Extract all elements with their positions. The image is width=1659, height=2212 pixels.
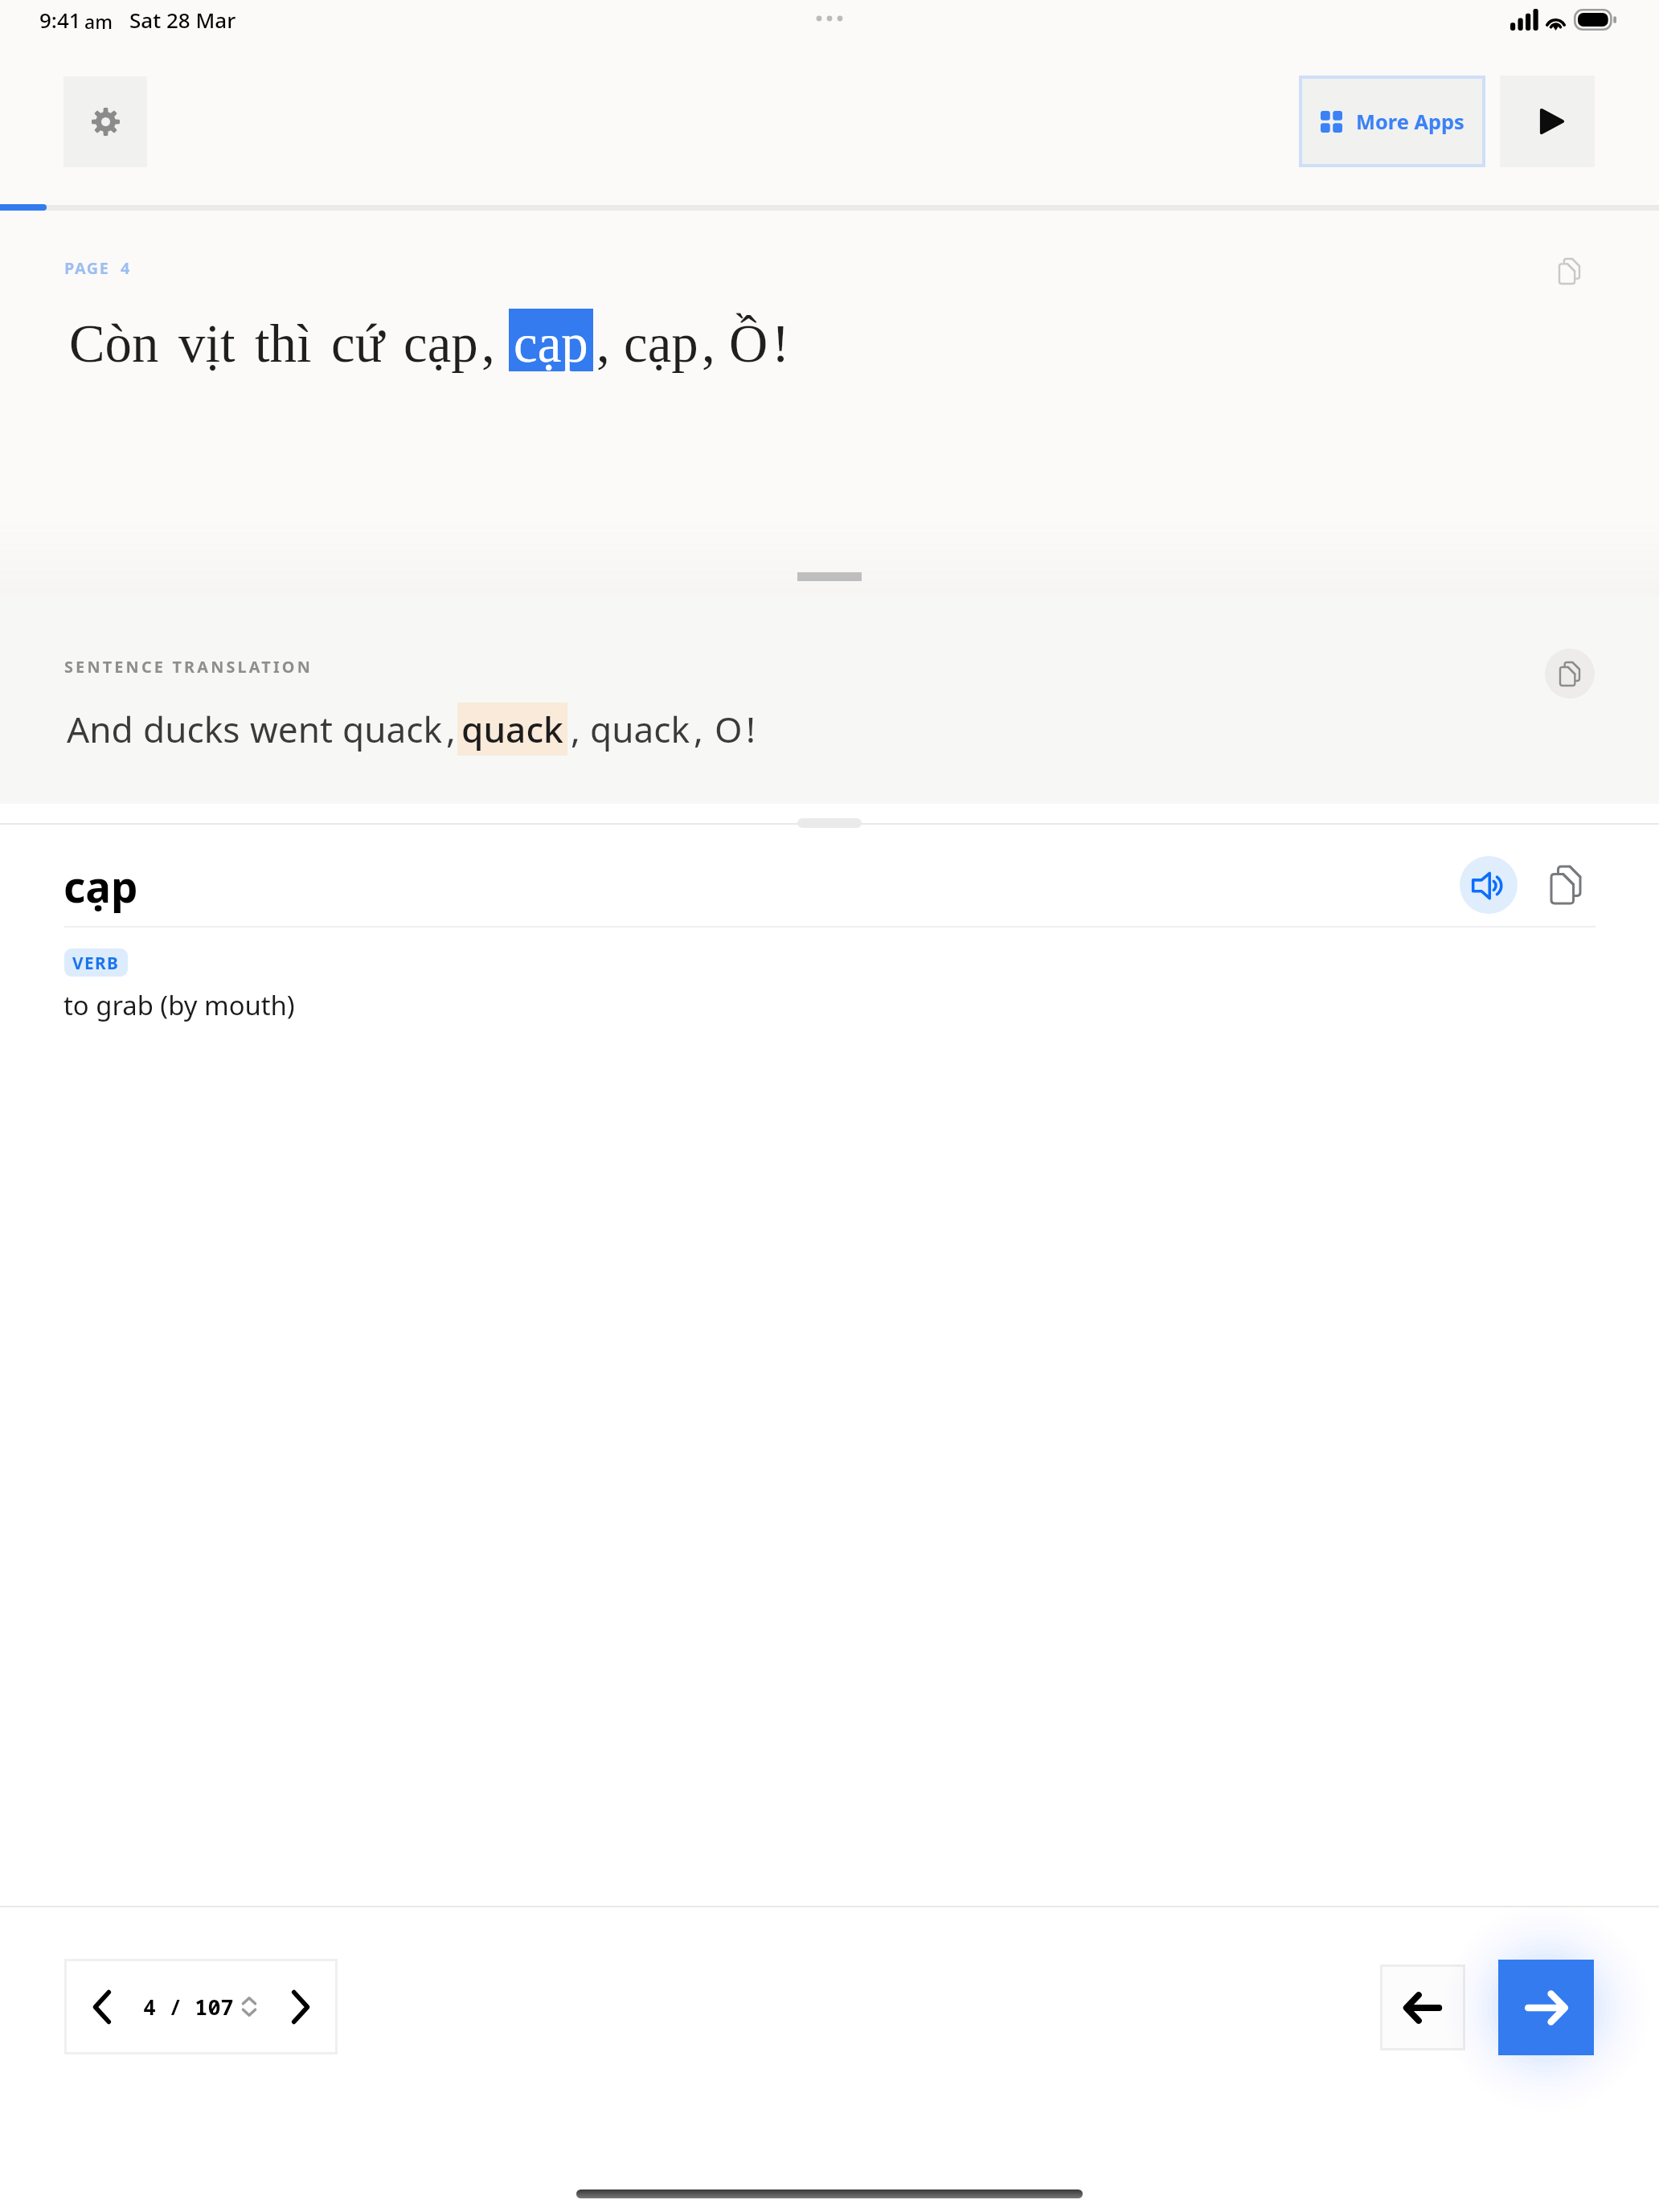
button[interactable]: ducks bbox=[143, 705, 240, 753]
staticText: SENTENCE TRANSLATION bbox=[64, 656, 313, 678]
staticText: , bbox=[596, 313, 610, 373]
staticText: , bbox=[446, 705, 456, 753]
button[interactable]: Copy sentence bbox=[1535, 235, 1603, 307]
staticText: , bbox=[481, 313, 495, 373]
staticText: 9:41 bbox=[39, 6, 81, 34]
button[interactable]: vịt bbox=[178, 313, 236, 373]
button[interactable]: VERB bbox=[64, 948, 128, 977]
button[interactable]: More Apps bbox=[1299, 76, 1485, 167]
staticText: to grab (by mouth) bbox=[63, 987, 295, 1023]
staticText: ! bbox=[772, 313, 790, 373]
button[interactable]: quack bbox=[590, 705, 690, 753]
staticText: cạp bbox=[63, 857, 138, 915]
staticText: More Apps bbox=[1356, 108, 1464, 136]
button[interactable]: Ồ bbox=[729, 313, 768, 373]
staticText: cạp bbox=[514, 313, 588, 373]
button[interactable]: Play pronunciation bbox=[1460, 856, 1518, 914]
staticText: quack bbox=[461, 705, 563, 753]
staticText: , bbox=[571, 705, 580, 753]
staticText: VERB bbox=[72, 952, 120, 974]
button[interactable]: Copy translation bbox=[1545, 649, 1595, 698]
staticText: ! bbox=[746, 705, 756, 753]
button[interactable]: thì bbox=[255, 313, 312, 373]
button[interactable]: cứ bbox=[331, 313, 384, 373]
button[interactable]: Còn bbox=[69, 313, 159, 373]
button[interactable]: cạp bbox=[514, 309, 588, 371]
staticText: PAGE 4 bbox=[64, 257, 131, 279]
button[interactable]: 4 / 107 bbox=[64, 1959, 338, 2054]
staticText: Sat 28 Mar bbox=[129, 6, 236, 34]
button[interactable]: Play bbox=[1500, 76, 1595, 167]
staticText: , bbox=[702, 313, 715, 373]
button[interactable]: And bbox=[67, 705, 133, 753]
staticText: , bbox=[694, 705, 703, 753]
staticText: am bbox=[84, 9, 113, 34]
button[interactable]: cạp bbox=[403, 313, 478, 373]
staticText: 4 / 107 bbox=[143, 1992, 234, 2022]
button[interactable]: O bbox=[715, 705, 743, 753]
button[interactable]: quack bbox=[342, 705, 443, 753]
button[interactable]: Settings bbox=[63, 76, 147, 167]
button[interactable]: cạp bbox=[624, 313, 698, 373]
button[interactable]: Previous bbox=[1380, 1964, 1465, 2050]
button[interactable]: went bbox=[250, 705, 333, 753]
button[interactable]: Copy word bbox=[1551, 866, 1580, 903]
button[interactable]: Next bbox=[1498, 1960, 1594, 2055]
